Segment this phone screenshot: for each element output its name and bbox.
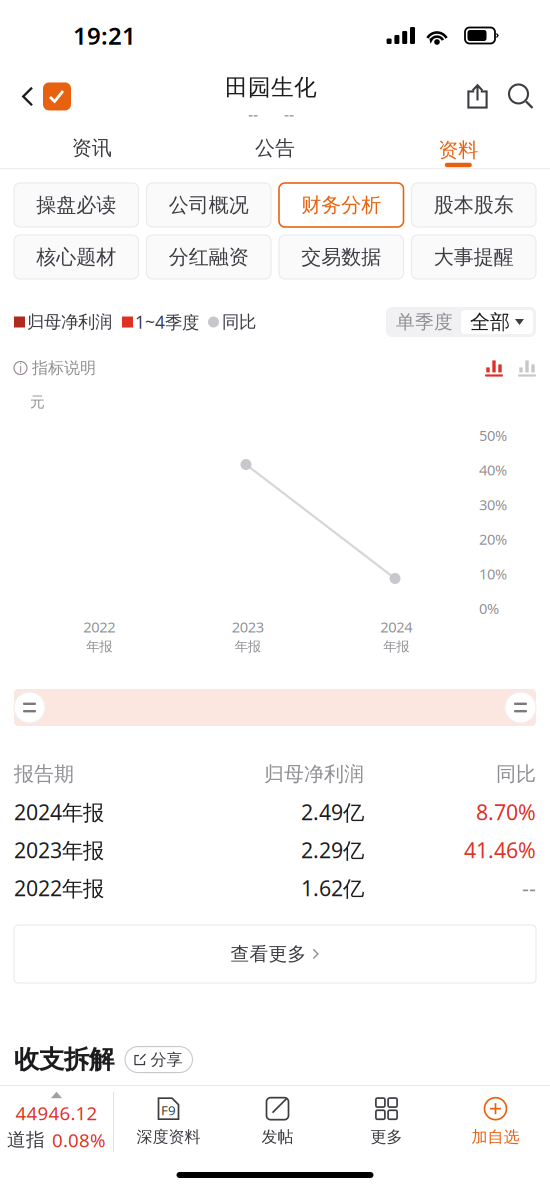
- staticText: 19:21: [73, 20, 136, 51]
- staticText: 公告: [255, 136, 295, 160]
- staticText: 财务分析: [301, 193, 381, 217]
- button[interactable]: 单季度: [386, 307, 461, 337]
- staticText: 44946.12: [15, 1101, 97, 1125]
- staticText: 2.29亿: [301, 836, 364, 864]
- staticText: 深度资料: [136, 1127, 200, 1147]
- button[interactable]: 分红融资: [146, 235, 271, 279]
- staticText: 操盘必读: [36, 193, 116, 217]
- staticText: 2023年报: [14, 836, 104, 864]
- staticText: 单季度: [396, 310, 453, 333]
- staticText: 分红融资: [169, 245, 249, 269]
- staticText: 核心题材: [36, 245, 116, 269]
- staticText: 40%: [479, 460, 507, 480]
- staticText: 指标说明: [32, 358, 96, 378]
- staticText: i: [19, 360, 22, 376]
- staticText: 公司概况: [169, 193, 249, 217]
- button[interactable]: 全部: [461, 310, 536, 334]
- staticText: 收支拆解: [14, 1044, 114, 1075]
- button[interactable]: 分享: [125, 1047, 192, 1073]
- staticText: 股本股东: [434, 193, 514, 217]
- staticText: 归母净利润: [27, 311, 112, 333]
- button[interactable]: F9: [114, 1091, 223, 1153]
- staticText: 大事提醒: [434, 245, 514, 269]
- button[interactable]: 更多: [332, 1091, 441, 1153]
- staticText: F9: [161, 1101, 176, 1119]
- button[interactable]: 核心题材: [14, 235, 138, 279]
- button[interactable]: 大事提醒: [411, 235, 536, 279]
- staticText: 同比: [222, 311, 256, 333]
- staticText: 年报: [235, 638, 261, 655]
- staticText: 加自选: [471, 1127, 519, 1147]
- staticText: 更多: [370, 1127, 402, 1147]
- button[interactable]: 操盘必读: [14, 183, 138, 227]
- staticText: 2022: [83, 617, 115, 636]
- staticText: 20%: [479, 529, 507, 549]
- staticText: 0.08%: [52, 1127, 106, 1152]
- button[interactable]: 公司概况: [146, 183, 271, 227]
- button[interactable]: 发帖: [223, 1091, 332, 1153]
- staticText: 50%: [479, 426, 507, 445]
- button[interactable]: 资料: [367, 128, 550, 168]
- staticText: 41.46%: [464, 836, 536, 864]
- staticText: 1.62亿: [301, 874, 364, 902]
- staticText: --: [284, 103, 294, 124]
- button[interactable]: Back: [0, 73, 85, 119]
- staticText: 2022年报: [14, 874, 104, 902]
- button[interactable]: 股本股东: [411, 183, 536, 227]
- staticText: 30%: [479, 495, 507, 514]
- staticText: 元: [30, 393, 45, 411]
- staticText: 分享: [150, 1050, 182, 1069]
- button[interactable]: 财务分析: [279, 183, 403, 227]
- staticText: 同比: [496, 762, 536, 786]
- staticText: 年报: [86, 638, 112, 655]
- button[interactable]: i: [14, 356, 96, 380]
- button[interactable]: Share: [457, 73, 498, 119]
- staticText: 资料: [438, 138, 478, 162]
- button[interactable]: 公告: [183, 128, 367, 168]
- staticText: 8.70%: [476, 798, 536, 826]
- staticText: 报告期: [14, 762, 74, 786]
- button[interactable]: Search: [498, 73, 550, 119]
- button[interactable]: 44946.12: [0, 1091, 113, 1153]
- staticText: 10%: [479, 564, 507, 583]
- staticText: 1~4季度: [135, 310, 199, 333]
- staticText: 2024: [380, 617, 412, 636]
- staticText: 全部: [470, 310, 510, 334]
- staticText: 2023: [232, 617, 264, 636]
- staticText: 归母净利润: [264, 762, 364, 786]
- staticText: 2024年报: [14, 798, 104, 826]
- button[interactable]: Column chart: [503, 359, 536, 376]
- staticText: --: [248, 103, 258, 124]
- button[interactable]: 交易数据: [279, 235, 403, 279]
- button[interactable]: 查看更多: [14, 925, 536, 983]
- staticText: --: [522, 874, 536, 902]
- staticText: 田园生化: [225, 73, 317, 101]
- button[interactable]: Bar chart: [485, 359, 503, 376]
- staticText: 交易数据: [301, 245, 381, 269]
- staticText: 道指: [7, 1128, 45, 1151]
- staticText: 0%: [479, 599, 499, 618]
- staticText: 资讯: [72, 136, 112, 160]
- staticText: 2.49亿: [301, 798, 364, 826]
- button[interactable]: 资讯: [0, 128, 183, 168]
- staticText: 查看更多: [230, 942, 306, 965]
- button[interactable]: 加自选: [441, 1091, 550, 1153]
- staticText: 发帖: [261, 1127, 293, 1147]
- staticText: 年报: [383, 638, 409, 655]
